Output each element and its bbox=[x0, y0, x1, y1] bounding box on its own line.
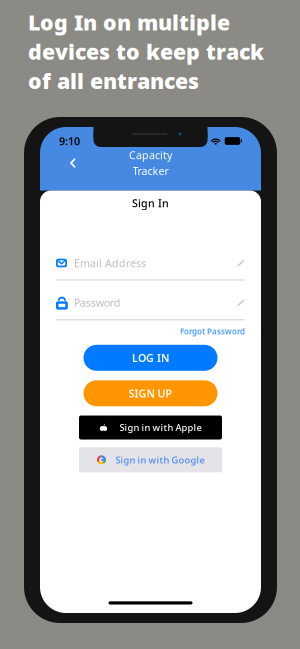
button[interactable]: Back bbox=[63, 151, 83, 175]
button[interactable]: LOG IN bbox=[83, 345, 217, 371]
staticText: Capacity bbox=[129, 148, 172, 162]
staticText: Sign In bbox=[132, 196, 169, 210]
staticText: Tracker bbox=[132, 164, 168, 178]
staticText: Forgot Password bbox=[180, 326, 245, 337]
button[interactable]: Forgot Password bbox=[180, 326, 245, 336]
button[interactable]: Sign in with Google bbox=[79, 447, 222, 472]
button[interactable]: Sign in with Apple bbox=[79, 415, 222, 439]
staticText: Sign in with Google bbox=[115, 454, 204, 466]
staticText: Log In on multiple devices to keep track… bbox=[28, 8, 264, 95]
staticText: Password bbox=[74, 296, 121, 310]
staticText: Email Address bbox=[74, 256, 146, 270]
staticText: SIGN UP bbox=[128, 386, 172, 400]
button[interactable]: SIGN UP bbox=[83, 380, 217, 406]
staticText: Sign in with Apple bbox=[119, 421, 201, 434]
staticText: 9:10 bbox=[59, 134, 80, 148]
staticText: LOG IN bbox=[132, 351, 169, 365]
